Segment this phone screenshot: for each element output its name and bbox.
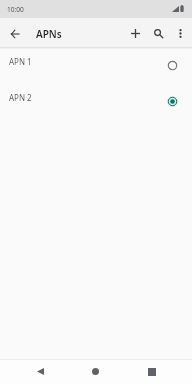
button[interactable]: More options [169, 22, 192, 45]
button[interactable]: APN 2 [0, 85, 192, 121]
button[interactable]: Recent apps [141, 361, 162, 382]
button[interactable]: Back [30, 361, 51, 382]
button[interactable]: APN 1 [0, 49, 192, 85]
button[interactable]: Home [85, 361, 106, 382]
staticText: 10:00 [7, 5, 24, 14]
button[interactable]: Search [147, 22, 170, 45]
staticText: APNs [36, 27, 62, 41]
button[interactable]: Navigate up [0, 19, 29, 48]
button[interactable]: Add APN [124, 22, 147, 45]
staticText: APN 1 [9, 56, 32, 67]
staticText: APN 2 [9, 92, 32, 103]
